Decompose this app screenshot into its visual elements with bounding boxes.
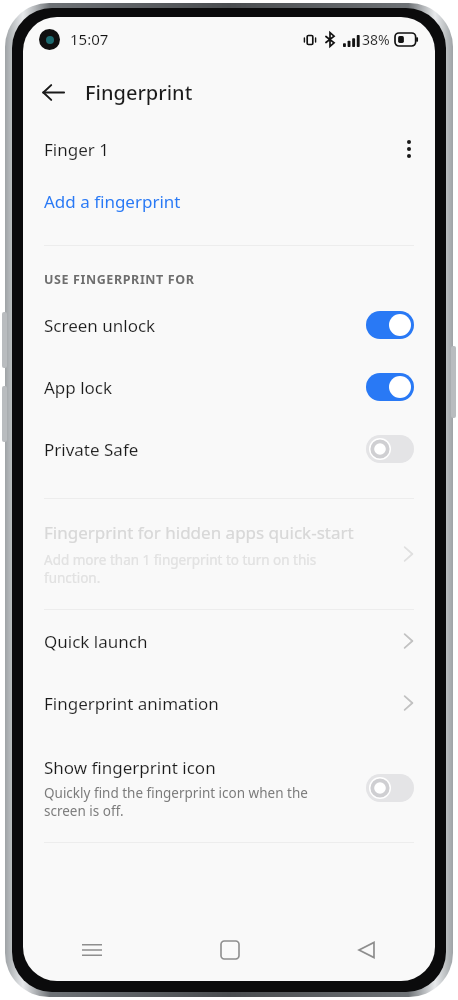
button[interactable]: Finger 1 [23,123,435,175]
button[interactable]: Add a fingerprint [23,175,435,227]
button[interactable]: Quick launch [23,610,435,672]
staticText: Screen unlock [44,314,156,337]
button[interactable]: Fingerprint for hidden apps quick-start [23,499,435,609]
staticText: Add more than 1 fingerprint to turn on t… [44,551,375,587]
staticText: Show fingerprint icon [44,756,216,779]
staticText: Private Safe [44,438,139,461]
button[interactable]: Back [31,70,75,114]
button[interactable]: App lock [23,356,435,418]
button[interactable]: Fingerprint animation [23,672,435,734]
staticText: 38% [362,30,390,49]
button[interactable]: Private Safe [23,418,435,480]
button[interactable]: Home [161,919,298,981]
button[interactable]: Recent apps [23,919,161,981]
staticText: App lock [44,376,113,399]
button[interactable]: Back [298,919,435,981]
staticText: Finger 1 [44,138,109,161]
staticText: Quickly find the fingerprint icon when t… [44,784,353,820]
staticText: Quick launch [44,630,148,653]
staticText: 15:07 [70,29,109,49]
button[interactable]: More options [389,129,429,169]
button[interactable]: Screen unlock [23,294,435,356]
staticText: Add a fingerprint [44,190,181,213]
staticText: Fingerprint animation [44,692,219,715]
button[interactable]: Show fingerprint icon [23,734,435,842]
staticText: Fingerprint for hidden apps quick-start [44,521,354,544]
staticText: Fingerprint [85,79,193,106]
staticText: USE FINGERPRINT FOR [44,271,195,288]
